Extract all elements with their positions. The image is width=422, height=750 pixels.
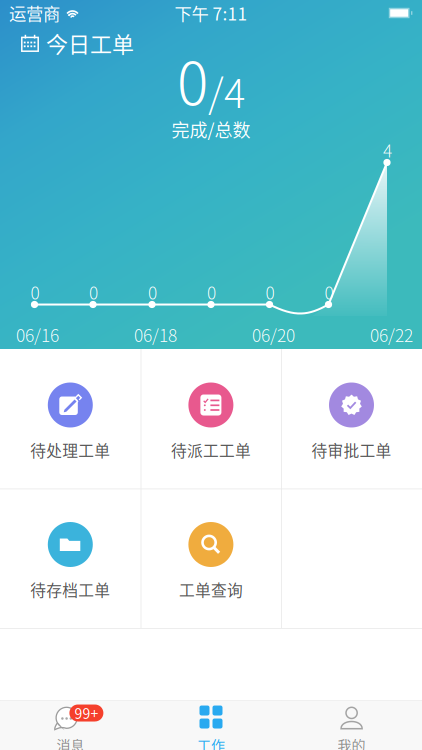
staticText: 工单查询 [179, 578, 243, 601]
staticText: 待审批工单 [311, 438, 391, 461]
button[interactable]: 99+ [0, 700, 141, 750]
button[interactable]: 待派工工单 [141, 349, 281, 488]
staticText: 0 [89, 279, 98, 305]
staticText: 06/16 [16, 322, 59, 347]
staticText: 消息 [56, 734, 84, 750]
staticText: 0 [324, 279, 333, 305]
staticText: 0 [177, 37, 208, 122]
staticText: 0 [207, 279, 216, 305]
button[interactable]: 待处理工单 [0, 349, 141, 488]
staticText: 4 [383, 137, 392, 163]
staticText: 99+ [74, 703, 98, 723]
staticText: 待存档工单 [30, 578, 110, 601]
staticText: 06/18 [134, 322, 177, 347]
staticText: /4 [208, 61, 245, 119]
staticText: 待派工工单 [171, 438, 251, 461]
staticText: 我的 [338, 734, 366, 750]
staticText: 下午 7:11 [174, 0, 247, 26]
staticText: 06/20 [252, 322, 295, 347]
staticText: 工作 [197, 734, 225, 750]
button[interactable]: 我的 [281, 700, 422, 750]
staticText: 运营商 [9, 0, 60, 26]
staticText: 06/22 [370, 322, 413, 347]
button[interactable]: 工单查询 [141, 488, 281, 628]
button[interactable]: 待存档工单 [0, 488, 141, 628]
staticText: 待处理工单 [30, 438, 110, 461]
staticText: 0 [148, 279, 157, 305]
staticText: 0 [30, 279, 39, 305]
staticText: 今日工单 [46, 27, 134, 59]
button[interactable]: 待审批工单 [281, 349, 422, 488]
button[interactable]: 工作 [141, 700, 281, 750]
staticText: 完成/总数 [171, 116, 250, 142]
staticText: 0 [265, 279, 274, 305]
